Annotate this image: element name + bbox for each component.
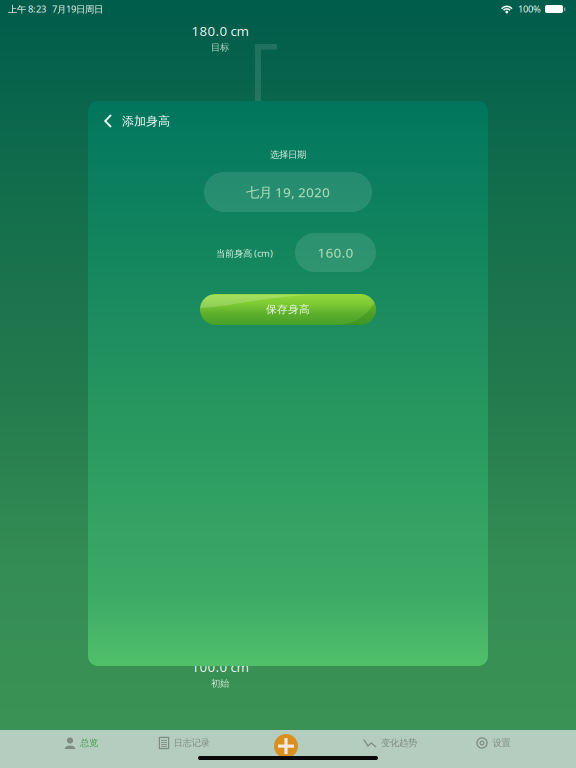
staticText: 添加身高 <box>122 114 170 129</box>
button[interactable]: 总览 <box>43 733 119 753</box>
staticText: 目标 <box>211 42 229 53</box>
button[interactable]: 设置 <box>455 733 531 753</box>
staticText: 180.0 cm <box>191 22 248 40</box>
staticText: 选择日期 <box>270 149 306 160</box>
staticText: 160.0 <box>317 244 353 261</box>
staticText: 100% <box>518 3 541 15</box>
button[interactable]: 保存身高 <box>200 294 376 325</box>
staticText: 日志记录 <box>173 737 209 749</box>
staticText: 保存身高 <box>266 303 310 316</box>
staticText: 设置 <box>492 737 510 749</box>
button[interactable]: 添加记录 <box>264 731 308 761</box>
staticText: 当前身高 (cm) <box>216 247 273 259</box>
button[interactable]: 返回 <box>97 108 119 134</box>
staticText: 初始 <box>211 678 229 689</box>
button[interactable]: 160.0 <box>295 233 376 272</box>
staticText: 七月 19, 2020 <box>246 183 330 201</box>
button[interactable]: 变化趋势 <box>352 733 428 753</box>
staticText: 变化趋势 <box>381 737 417 749</box>
staticText: 总览 <box>80 737 98 749</box>
staticText: 100.0 cm <box>191 658 248 676</box>
button[interactable]: 七月 19, 2020 <box>204 172 372 212</box>
button[interactable]: 日志记录 <box>146 733 222 753</box>
staticText: 上午 8:23 7月19日周日 <box>8 3 103 15</box>
